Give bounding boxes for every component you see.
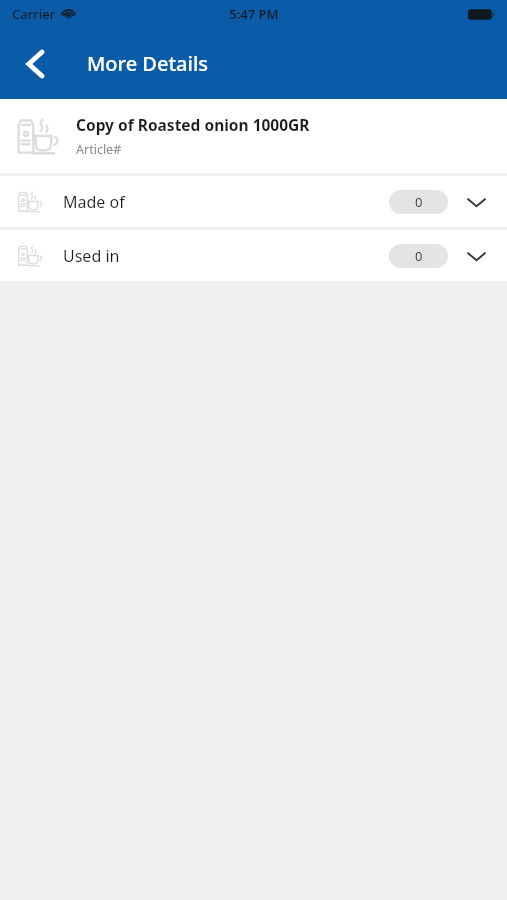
button[interactable]: Made of xyxy=(0,176,507,227)
staticText: Used in xyxy=(63,245,120,267)
staticText: Article# xyxy=(76,141,122,158)
staticText: More Details xyxy=(87,50,209,77)
button[interactable]: Expand Made of xyxy=(459,185,493,219)
staticText: 5:47 PM xyxy=(229,5,279,23)
staticText: Carrier xyxy=(12,5,56,23)
button[interactable]: Back xyxy=(8,36,64,92)
button[interactable]: Used in xyxy=(0,230,507,281)
button[interactable]: Copy of Roasted onion 1000GR xyxy=(0,99,507,173)
staticText: Copy of Roasted onion 1000GR xyxy=(76,114,310,135)
button[interactable]: Expand Used in xyxy=(459,239,493,273)
staticText: 0 xyxy=(415,247,423,265)
staticText: Made of xyxy=(63,191,125,213)
staticText: 0 xyxy=(415,193,423,211)
